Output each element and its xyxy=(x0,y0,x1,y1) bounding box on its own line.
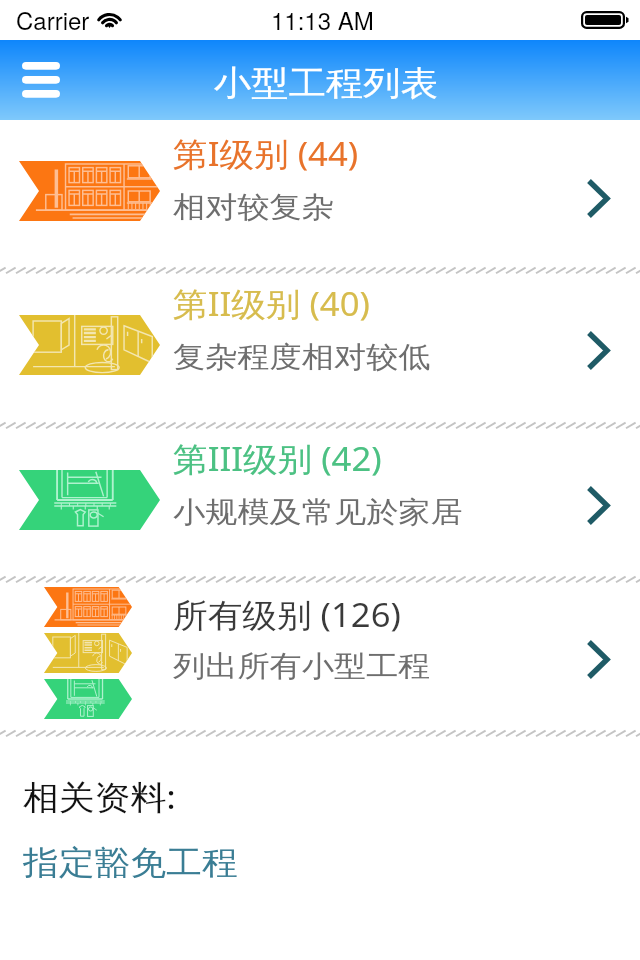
staticText: 列出所有小型工程 xyxy=(173,648,430,685)
staticText: 11:13 AM xyxy=(271,2,374,36)
staticText: Carrier xyxy=(16,2,90,36)
staticText: 第III级别 (42) xyxy=(173,436,382,481)
staticText: 相关资料: xyxy=(23,774,176,819)
staticText: 小型工程列表 xyxy=(214,62,438,105)
button[interactable]: Menu xyxy=(10,50,72,110)
staticText: 所有级别 (126) xyxy=(173,592,402,637)
button[interactable]: 第I级别 (44) xyxy=(0,120,640,270)
staticText: 第II级别 (40) xyxy=(173,281,370,326)
other: Open 第III级别 (42) xyxy=(556,425,640,579)
staticText: 复杂程度相对较低 xyxy=(173,339,430,376)
other: Open 所有级别 (126) xyxy=(556,579,640,733)
staticText: 指定豁免工程 xyxy=(23,842,238,884)
button[interactable]: 所有级别 (126) xyxy=(0,579,640,733)
other: Open 第II级别 (40) xyxy=(556,270,640,425)
staticText: 小规模及常见於家居 xyxy=(173,494,463,531)
button[interactable]: 指定豁免工程 xyxy=(23,842,221,884)
staticText: 相对较复杂 xyxy=(173,189,334,226)
button[interactable]: 第II级别 (40) xyxy=(0,270,640,425)
other: Open 第I级别 (44) xyxy=(556,120,640,270)
staticText: 第I级别 (44) xyxy=(173,131,359,176)
button[interactable]: 第III级别 (42) xyxy=(0,425,640,579)
